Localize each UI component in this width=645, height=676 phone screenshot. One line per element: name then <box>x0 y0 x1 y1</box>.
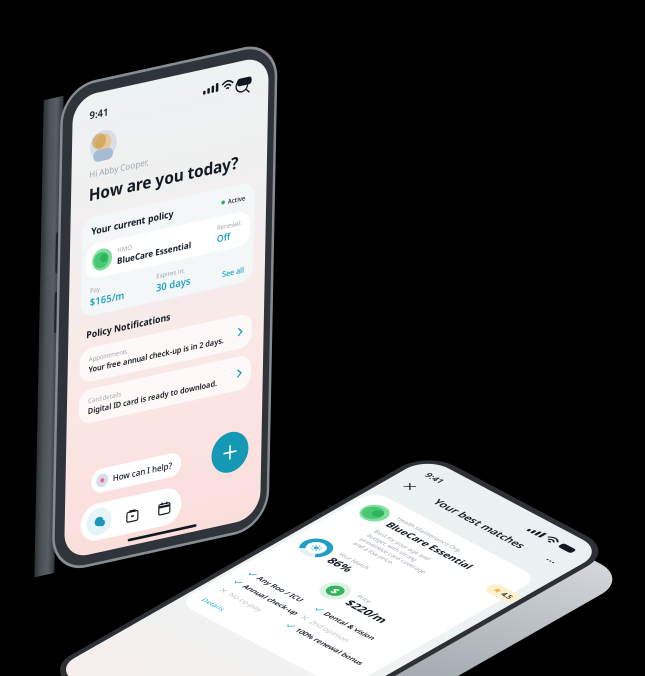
button[interactable]: Card details <box>24 546 369 608</box>
staticText: Your best matches <box>98 66 292 94</box>
staticText: 2nd opinion <box>197 458 280 477</box>
staticText: Any Roo / ICU <box>49 425 146 445</box>
staticText: $220/m <box>200 371 283 401</box>
staticText: BlueCare Essential <box>95 309 244 330</box>
staticText: BlueCare Essential <box>89 167 273 193</box>
staticText: 30 days <box>174 373 243 398</box>
staticText: Details <box>29 532 74 549</box>
staticText: Card details <box>42 559 109 575</box>
staticText: HMO <box>95 292 124 308</box>
staticText: Pay <box>42 356 62 372</box>
staticText: Annual check-up <box>49 458 167 477</box>
staticText: Price <box>200 355 228 371</box>
staticText: Health Maintenance Org. <box>89 150 229 166</box>
staticText: Digital ID card is ready to download. <box>42 576 301 596</box>
staticText: Policy Notifications <box>36 433 205 456</box>
staticText: Your Match <box>94 287 157 303</box>
staticText: Dental & vision <box>197 425 305 445</box>
staticText: How are you today? <box>36 165 336 206</box>
staticText: No co-pay <box>49 490 118 510</box>
staticText: Your free annual check-up is in 2 days. <box>42 500 313 519</box>
staticText: Expires in: <box>174 356 231 372</box>
staticText: $165/m <box>42 373 111 398</box>
staticText: 100% renewal bonus <box>197 490 342 510</box>
button[interactable]: Details <box>29 532 74 549</box>
staticText: Best for your age and budget, with stron… <box>89 201 231 265</box>
staticText: $ <box>158 365 169 392</box>
staticText: Hi Abby Cooper, <box>36 138 155 159</box>
staticText: Your current policy <box>42 243 207 266</box>
staticText: Appointments <box>42 483 120 499</box>
button[interactable]: Appointments <box>24 470 369 532</box>
staticText: 86% <box>94 303 140 333</box>
